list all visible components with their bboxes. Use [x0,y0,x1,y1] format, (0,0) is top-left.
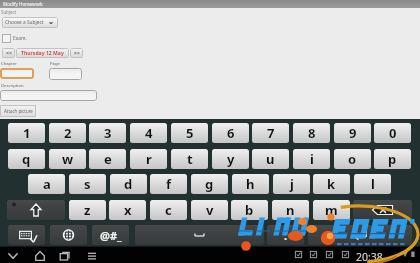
button[interactable]: >> [70,48,83,58]
button[interactable]: 2 [49,123,86,143]
staticText: k [327,175,336,193]
staticText: v [206,201,214,219]
staticText: << [6,50,12,57]
button[interactable]: b [231,200,268,220]
button[interactable]: Language [50,225,87,245]
staticText: l [371,175,375,193]
button[interactable]: Recents [59,250,71,262]
button[interactable]: Enter [308,225,412,245]
staticText: b [245,201,254,219]
button[interactable] [0,90,97,101]
staticText: Page [50,61,60,67]
staticText: u [266,150,275,168]
staticText: n [286,201,295,219]
button[interactable]: d [110,174,147,194]
button[interactable]: 3 [89,123,126,143]
staticText: f [166,175,172,193]
staticText: m [325,201,338,219]
button[interactable]: Choose a Subject [2,17,58,28]
button[interactable]: Home [34,250,46,262]
staticText: 3 [104,124,112,142]
button[interactable]: v [191,200,228,220]
button[interactable]: n [272,200,309,220]
button[interactable]: e [89,149,126,169]
button[interactable]: Exam. [2,34,27,43]
staticText: z [84,201,91,219]
button[interactable]: 1 [8,123,45,143]
staticText: w [62,150,74,168]
staticText: Exam. [13,35,27,42]
button[interactable]: @#_ [92,225,129,245]
button[interactable]: 9 [334,123,371,143]
button[interactable]: << [2,48,15,58]
button[interactable]: Hide keyboard [8,225,45,245]
staticText: Choose a Subject [5,19,44,26]
staticText: p [388,150,397,168]
staticText: t [187,150,193,168]
staticText: 7 [267,124,275,142]
staticText: c [165,201,172,219]
button[interactable]: Back [7,250,19,262]
button[interactable]: s [69,174,106,194]
button[interactable] [0,68,34,79]
button[interactable]: Attach picture [0,105,36,117]
button[interactable]: c [150,200,187,220]
button[interactable]: Shift [7,200,65,220]
staticText: a [43,175,51,193]
button[interactable]: y [212,149,249,169]
button[interactable]: t [171,149,208,169]
staticText: Thursday 12 May [21,50,64,57]
button[interactable]: g [191,174,228,194]
button[interactable]: k [313,174,350,194]
staticText: 9 [349,124,357,142]
button[interactable]: h [232,174,269,194]
button[interactable]: . [267,225,304,245]
button[interactable]: i [293,149,330,169]
button[interactable]: Thursday 12 May [16,48,69,58]
staticText: @#_ [100,228,122,243]
button[interactable]: m [313,200,350,220]
staticText: q [22,150,31,168]
staticText: 0 [389,124,397,142]
staticText: g [205,175,214,193]
staticText: r [146,150,152,168]
button[interactable]: u [252,149,289,169]
staticText: j [290,175,294,193]
button[interactable]: Backspace [353,200,412,220]
staticText: Attach picture [4,108,33,114]
button[interactable]: Menu [86,250,98,262]
button[interactable]: r [130,149,167,169]
button[interactable]: x [109,200,146,220]
button[interactable]: j [273,174,310,194]
button[interactable]: z [69,200,106,220]
button[interactable]: l [354,174,391,194]
button[interactable]: Space [135,225,264,245]
staticText: Subject [1,9,17,15]
button[interactable]: q [8,149,45,169]
staticText: 4 [145,124,153,142]
staticText: x [124,201,132,219]
staticText: >> [74,50,80,57]
button[interactable]: f [150,174,187,194]
staticText: y [227,150,235,168]
staticText: . [284,228,288,243]
staticText: e [104,150,112,168]
button[interactable]: p [374,149,411,169]
button[interactable]: o [334,149,371,169]
button[interactable]: 7 [252,123,289,143]
staticText: 6 [227,124,235,142]
button[interactable]: a [28,174,65,194]
button[interactable]: 0 [374,123,411,143]
staticText: 2 [64,124,72,142]
staticText: 8 [308,124,316,142]
staticText: i [310,150,314,168]
staticText: Modify Homework [3,1,43,7]
button[interactable]: 5 [171,123,208,143]
staticText: s [84,175,91,193]
button[interactable]: w [49,149,86,169]
button[interactable]: 8 [293,123,330,143]
staticText: 5 [186,124,194,142]
button[interactable] [49,68,82,80]
button[interactable]: 6 [212,123,249,143]
button[interactable]: 4 [130,123,167,143]
